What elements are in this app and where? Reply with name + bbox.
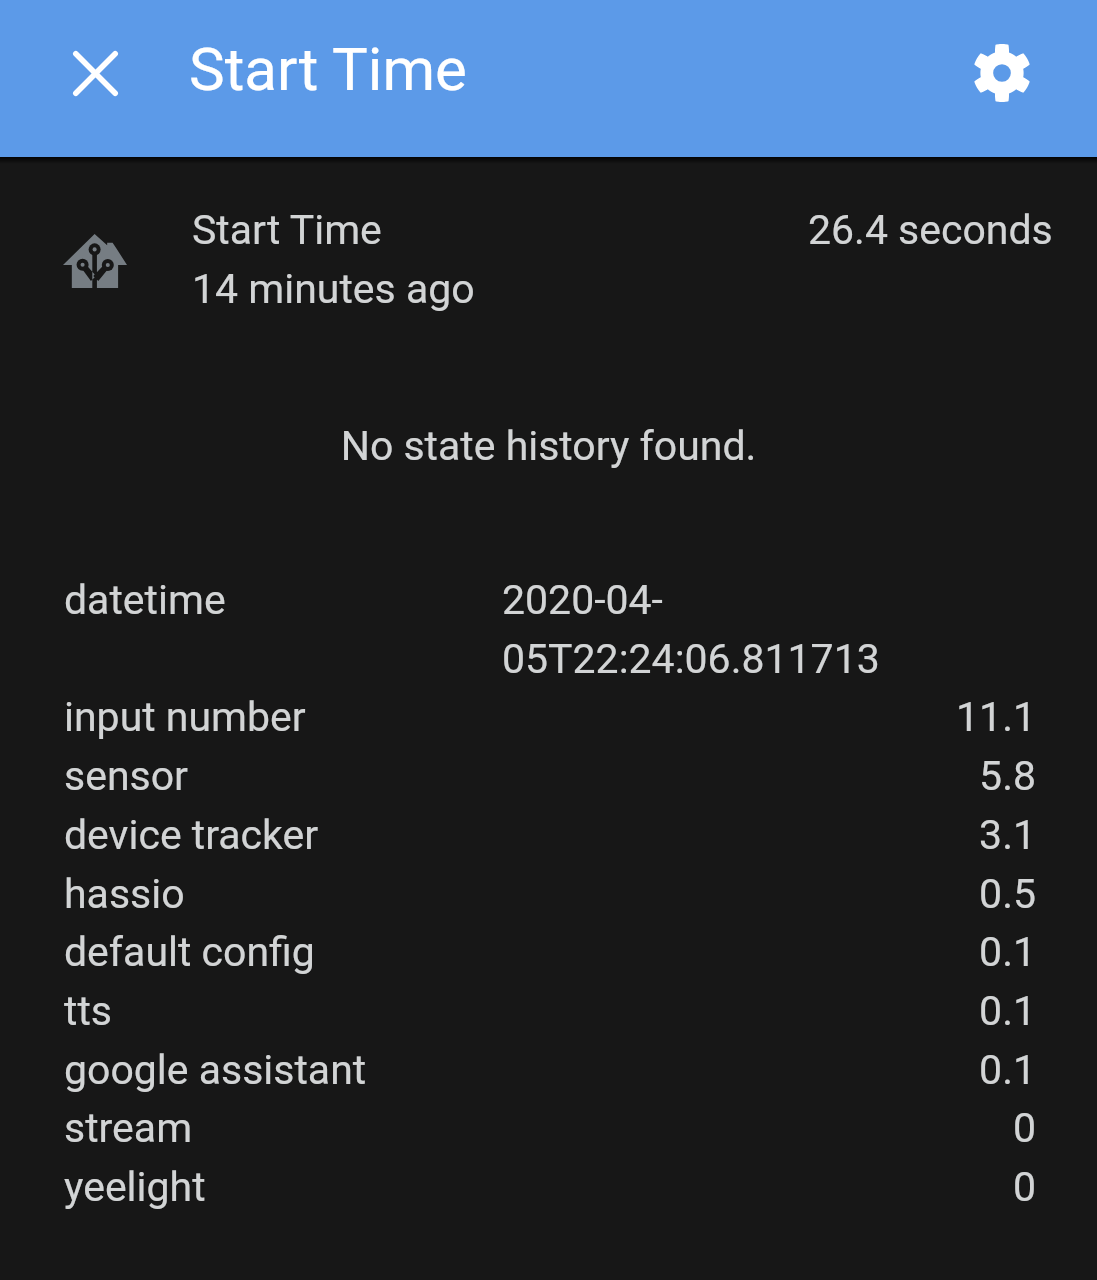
staticText: input number xyxy=(64,693,502,741)
button[interactable]: datetime xyxy=(64,576,1036,683)
button[interactable]: default config xyxy=(64,928,1036,976)
staticText: 0.1 xyxy=(502,987,1036,1035)
staticText: datetime xyxy=(64,576,502,624)
button[interactable]: Start Time xyxy=(0,190,1097,320)
staticText: hassio xyxy=(64,870,502,918)
staticText: 0 xyxy=(502,1163,1036,1211)
button[interactable]: tts xyxy=(64,987,1036,1035)
staticText: 11.1 xyxy=(502,693,1036,741)
staticText: Start Time xyxy=(192,206,382,254)
staticText: 0.1 xyxy=(502,1046,1036,1094)
staticText: sensor xyxy=(64,752,502,800)
button[interactable]: stream xyxy=(64,1104,1036,1152)
button[interactable]: device tracker xyxy=(64,811,1036,859)
staticText: 5.8 xyxy=(502,752,1036,800)
staticText: 0.1 xyxy=(502,928,1036,976)
staticText: 3.1 xyxy=(502,811,1036,859)
button[interactable]: Settings xyxy=(958,29,1046,117)
staticText: google assistant xyxy=(64,1046,502,1094)
button[interactable]: hassio xyxy=(64,870,1036,918)
staticText: 14 minutes ago xyxy=(192,265,475,313)
button[interactable]: yeelight xyxy=(64,1163,1036,1211)
staticText: Start Time xyxy=(189,34,467,104)
staticText: default config xyxy=(64,928,502,976)
staticText: 26.4 seconds xyxy=(808,206,1053,254)
staticText: device tracker xyxy=(64,811,502,859)
button[interactable]: google assistant xyxy=(64,1046,1036,1094)
staticText: 0 xyxy=(502,1104,1036,1152)
button[interactable]: input number xyxy=(64,693,1036,741)
staticText: yeelight xyxy=(64,1163,502,1211)
staticText: stream xyxy=(64,1104,502,1152)
button[interactable]: sensor xyxy=(64,752,1036,800)
staticText: 2020-04- 05T22:24:06.811713 xyxy=(502,576,1036,683)
button[interactable]: Close xyxy=(51,29,139,117)
staticText: 0.5 xyxy=(502,870,1036,918)
staticText: tts xyxy=(64,987,502,1035)
staticText: No state history found. xyxy=(0,422,1097,470)
